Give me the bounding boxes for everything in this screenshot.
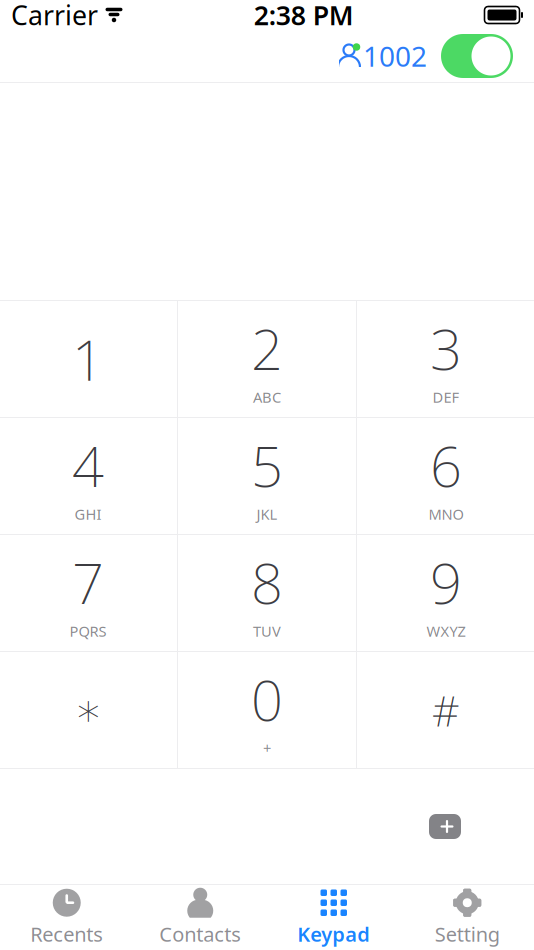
button[interactable]: 0 xyxy=(178,652,356,768)
staticText: Recents xyxy=(30,921,103,947)
staticText: MNO xyxy=(428,504,463,524)
button[interactable]: 1 xyxy=(0,301,177,417)
staticText: 1002 xyxy=(363,37,427,75)
staticText: 1 xyxy=(72,322,104,396)
button[interactable]: 4 xyxy=(0,418,177,534)
button[interactable]: Line enabled xyxy=(441,34,513,78)
staticText: 4 xyxy=(72,428,104,502)
button[interactable]: Keypad xyxy=(267,885,400,950)
staticText: ∗ xyxy=(74,684,102,736)
staticText: 9 xyxy=(430,545,462,619)
staticText: 2 xyxy=(251,311,283,385)
staticText: + xyxy=(263,738,271,758)
staticText: 2:38 PM xyxy=(254,0,354,33)
button[interactable]: 2 xyxy=(178,301,356,417)
staticText: Setting xyxy=(435,921,500,947)
staticText: 5 xyxy=(251,428,283,502)
staticText: GHI xyxy=(74,504,101,524)
staticText: 0 xyxy=(251,662,283,736)
button[interactable]: 8 xyxy=(178,535,356,651)
staticText: JKL xyxy=(256,504,277,524)
button[interactable]: # xyxy=(357,652,534,768)
staticText: PQRS xyxy=(69,621,106,641)
button[interactable]: Setting xyxy=(400,885,534,950)
staticText: Keypad xyxy=(297,921,370,947)
button[interactable]: Contacts xyxy=(133,885,267,950)
staticText: 3 xyxy=(430,311,462,385)
staticText: 7 xyxy=(72,545,104,619)
button[interactable]: Account 1002 xyxy=(338,37,427,75)
button[interactable]: 5 xyxy=(178,418,356,534)
staticText: DEF xyxy=(432,387,459,407)
staticText: Carrier xyxy=(11,0,98,33)
staticText: ABC xyxy=(253,387,281,407)
button[interactable]: Recents xyxy=(0,885,133,950)
staticText: Contacts xyxy=(159,921,241,947)
button[interactable]: ∗ xyxy=(0,652,177,768)
staticText: 6 xyxy=(430,428,462,502)
button[interactable]: 6 xyxy=(357,418,534,534)
button[interactable]: 7 xyxy=(0,535,177,651)
button[interactable]: 3 xyxy=(357,301,534,417)
staticText: TUV xyxy=(253,621,281,641)
button[interactable]: Delete xyxy=(356,769,534,884)
button[interactable]: 9 xyxy=(357,535,534,651)
staticText: WXYZ xyxy=(426,621,465,641)
staticText: # xyxy=(432,682,460,738)
staticText: 8 xyxy=(251,545,283,619)
